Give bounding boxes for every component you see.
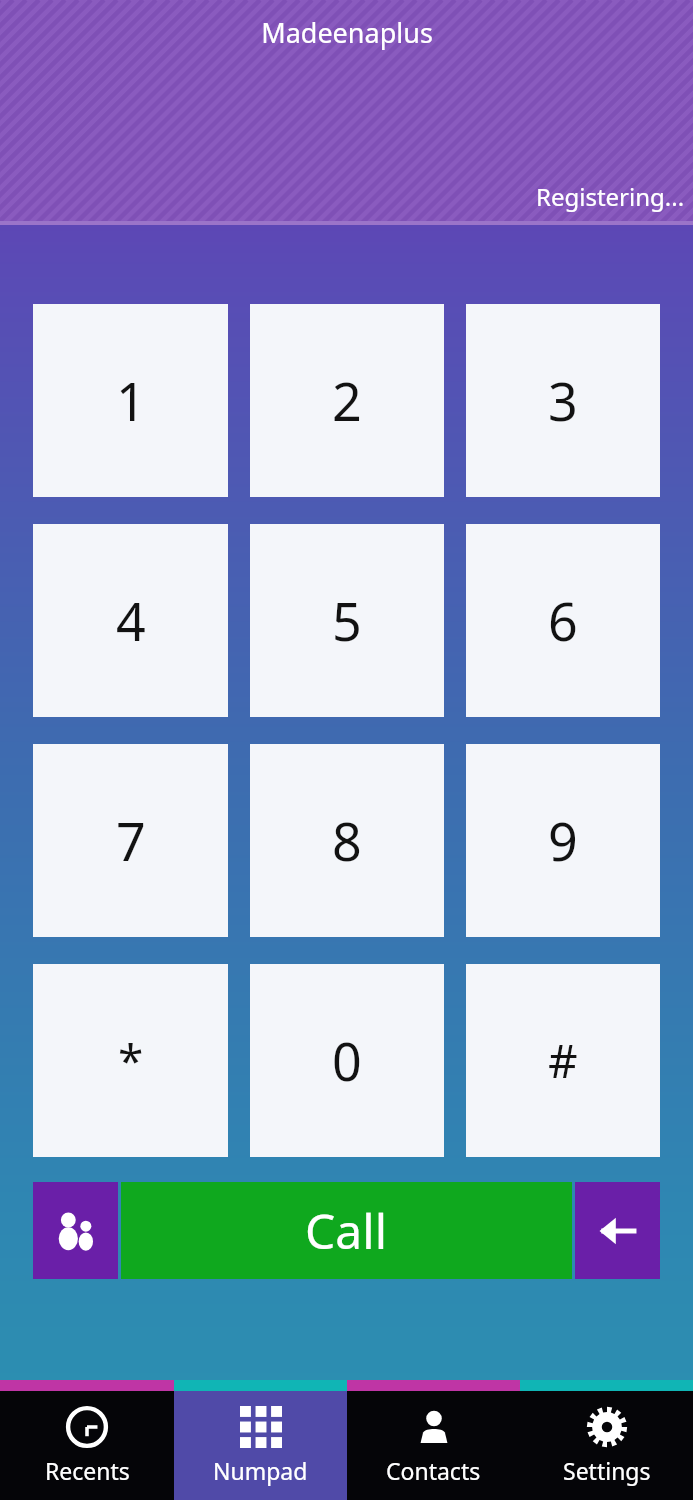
button[interactable]: 1 [33, 304, 228, 497]
button[interactable]: Contacts [347, 1391, 520, 1500]
staticText: 1 [116, 365, 146, 436]
staticText: 8 [332, 805, 362, 876]
button[interactable]: # [466, 964, 660, 1157]
button[interactable]: Backspace [575, 1182, 660, 1279]
staticText: Call [305, 1198, 388, 1263]
staticText: 3 [548, 365, 578, 436]
staticText: 7 [116, 805, 146, 876]
button[interactable]: 5 [250, 524, 444, 717]
staticText: 5 [332, 585, 362, 656]
button[interactable]: * [33, 964, 228, 1157]
staticText: * [118, 1029, 144, 1092]
button[interactable]: 9 [466, 744, 660, 937]
staticText: Registering... [536, 180, 685, 213]
staticText: Settings [563, 1455, 651, 1486]
button[interactable]: Contacts [33, 1182, 118, 1279]
button[interactable]: Call [121, 1182, 572, 1279]
staticText: # [548, 1029, 578, 1092]
staticText: Recents [45, 1455, 130, 1486]
button[interactable]: 4 [33, 524, 228, 717]
button[interactable]: 8 [250, 744, 444, 937]
staticText: 2 [332, 365, 362, 436]
button[interactable]: Settings [520, 1391, 693, 1500]
staticText: 9 [548, 805, 578, 876]
staticText: Numpad [213, 1455, 308, 1486]
staticText: 0 [332, 1025, 362, 1096]
staticText: Madeenaplus [261, 14, 433, 51]
button[interactable]: Recents [0, 1391, 174, 1500]
button[interactable]: Numpad [174, 1391, 347, 1500]
button[interactable]: 6 [466, 524, 660, 717]
staticText: Contacts [386, 1455, 481, 1486]
staticText: 4 [116, 585, 146, 656]
button[interactable]: 3 [466, 304, 660, 497]
button[interactable]: 0 [250, 964, 444, 1157]
button[interactable]: 2 [250, 304, 444, 497]
staticText: 6 [548, 585, 578, 656]
button[interactable]: 7 [33, 744, 228, 937]
